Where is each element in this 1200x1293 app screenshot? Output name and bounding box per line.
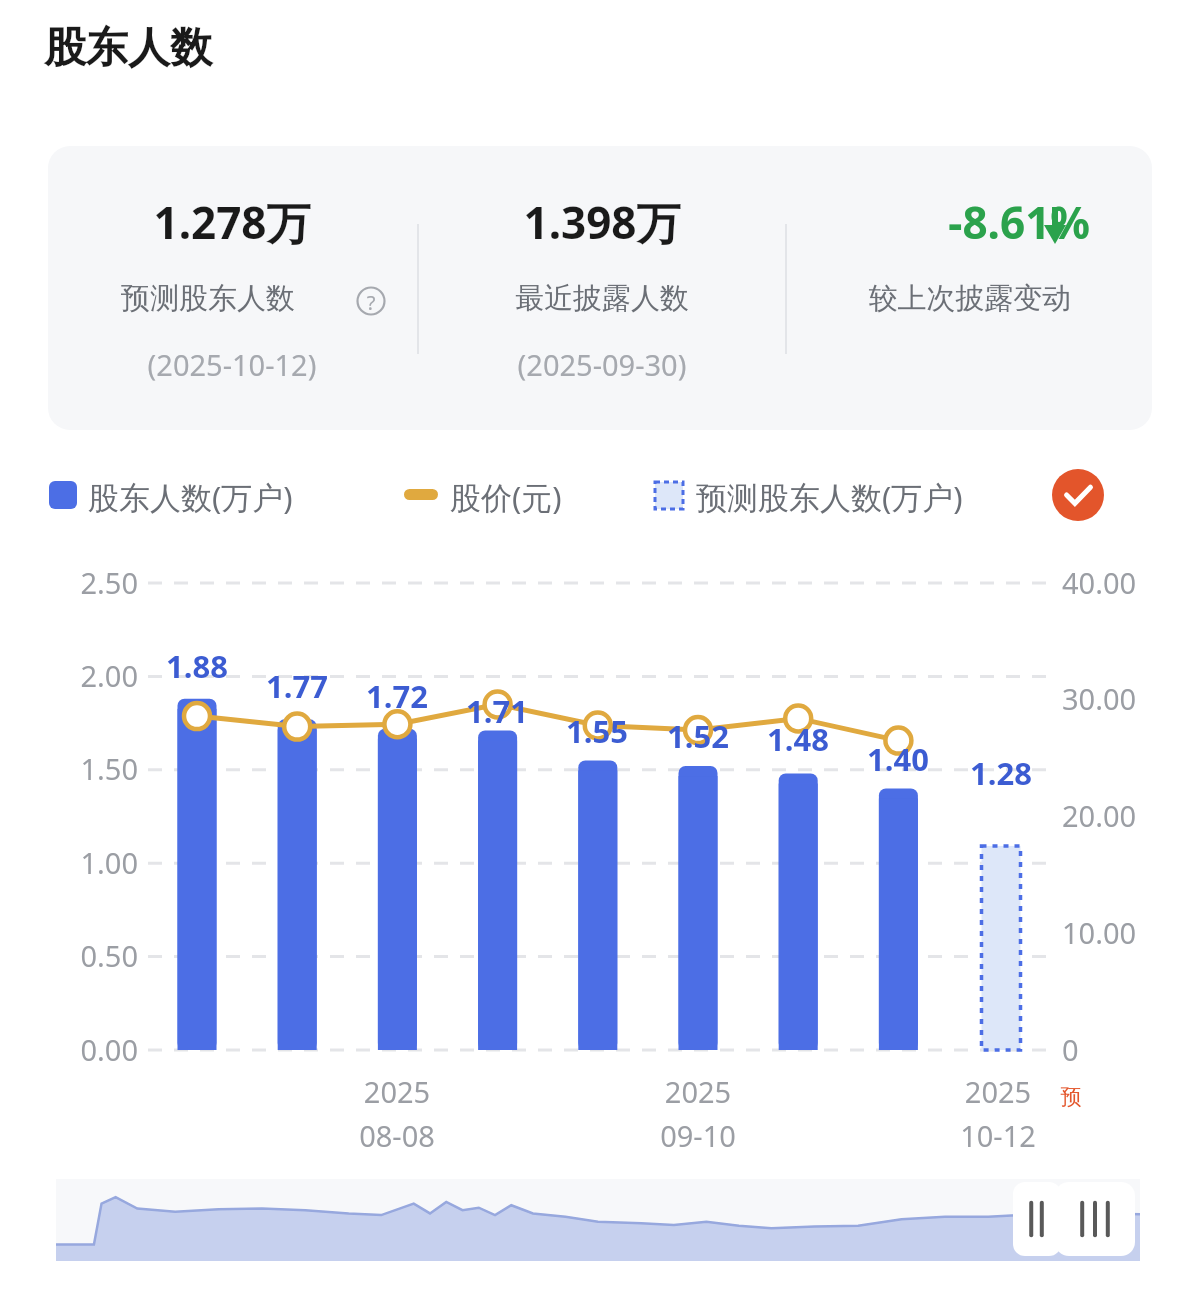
staticText: 08-08 bbox=[297, 1116, 497, 1155]
button[interactable]: 右侧滑块 bbox=[1055, 1182, 1135, 1256]
staticText: 股东人数 bbox=[44, 22, 544, 75]
button[interactable]: 左侧滑块 bbox=[1013, 1182, 1061, 1256]
staticText: 1.00 bbox=[48, 843, 138, 882]
staticText: 0.50 bbox=[48, 936, 138, 975]
staticText: 1.48 bbox=[738, 718, 858, 760]
staticText: 股东人数(万户) bbox=[88, 476, 388, 518]
staticText: 10.00 bbox=[1062, 913, 1182, 952]
staticText: 1.55 bbox=[537, 710, 657, 752]
button[interactable]: 确认 bbox=[1052, 469, 1104, 521]
staticText: (2025-09-30) bbox=[418, 345, 786, 384]
staticText: 股价(元) bbox=[450, 476, 650, 518]
staticText: 1.71 bbox=[437, 690, 557, 732]
staticText: 1.77 bbox=[237, 665, 357, 707]
staticText: 预测股东人数(万户) bbox=[696, 476, 1076, 518]
staticText: 1.40 bbox=[838, 738, 958, 780]
staticText: ? bbox=[356, 289, 386, 316]
staticText: 较上次披露变动 bbox=[786, 280, 1154, 317]
staticText: 2.50 bbox=[48, 563, 138, 602]
staticText: 2025 bbox=[898, 1072, 1098, 1111]
staticText: 40.00 bbox=[1062, 563, 1182, 602]
staticText: 2025 bbox=[598, 1072, 798, 1111]
button[interactable] bbox=[44, 470, 344, 522]
staticText: 1.72 bbox=[337, 675, 457, 717]
staticText: 09-10 bbox=[598, 1116, 798, 1155]
button[interactable] bbox=[650, 470, 1040, 522]
staticText: 最近披露人数 bbox=[418, 280, 786, 317]
staticText: 20.00 bbox=[1062, 796, 1182, 835]
staticText: 1.88 bbox=[137, 645, 257, 687]
staticText: 2.00 bbox=[48, 656, 138, 695]
button[interactable] bbox=[398, 470, 588, 522]
staticText: -8.61% bbox=[770, 192, 1090, 252]
staticText: 预 bbox=[1046, 1084, 1096, 1110]
button[interactable]: 说明 bbox=[356, 286, 386, 316]
staticText: 0.00 bbox=[48, 1030, 138, 1069]
staticText: (2025-10-12) bbox=[48, 345, 416, 384]
staticText: 1.28 bbox=[941, 752, 1061, 794]
staticText: 30.00 bbox=[1062, 679, 1182, 718]
staticText: 预测股东人数 bbox=[48, 280, 368, 317]
button[interactable] bbox=[48, 146, 1152, 430]
staticText: 10-12 bbox=[898, 1116, 1098, 1155]
staticText: 0 bbox=[1062, 1030, 1182, 1069]
staticText: 1.278万 bbox=[48, 192, 416, 252]
staticText: 1.52 bbox=[638, 715, 758, 757]
staticText: 1.398万 bbox=[418, 192, 786, 252]
staticText: 1.50 bbox=[48, 749, 138, 788]
staticText: 2025 bbox=[297, 1072, 497, 1111]
